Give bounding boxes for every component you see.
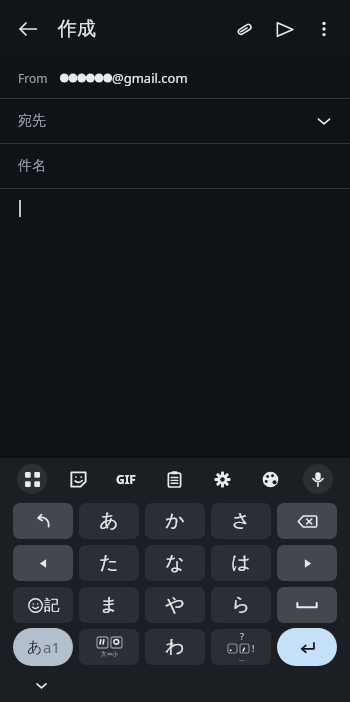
button[interactable]: は <box>211 545 271 581</box>
button[interactable]: た <box>79 545 139 581</box>
button[interactable] <box>0 189 350 458</box>
button[interactable]: 件名 <box>0 144 350 188</box>
staticText: や <box>165 593 185 617</box>
staticText: GIF <box>116 471 136 487</box>
other: Move right <box>301 557 314 570</box>
staticText: か <box>165 509 185 533</box>
button[interactable]: さ <box>211 503 271 539</box>
staticText: … <box>239 654 245 664</box>
staticText: a1 <box>43 637 60 657</box>
button[interactable]: Voice input <box>294 458 342 500</box>
button[interactable]: 宛先 <box>0 99 350 143</box>
other: Space <box>296 600 318 610</box>
button[interactable]: ま <box>79 587 139 623</box>
staticText: わ <box>165 635 185 659</box>
button[interactable]: Apps <box>8 458 55 500</box>
button[interactable]: Stickers <box>55 458 102 500</box>
button[interactable]: From <box>0 58 350 98</box>
staticText: ら <box>231 593 251 617</box>
button[interactable]: か <box>145 503 205 539</box>
staticText: た <box>99 551 119 575</box>
staticText: は <box>231 551 251 575</box>
staticText: あ <box>99 509 119 533</box>
staticText: さ <box>231 509 251 533</box>
button[interactable]: な <box>145 545 205 581</box>
button[interactable]: Settings <box>198 458 246 500</box>
button[interactable]: Back <box>8 9 48 49</box>
button[interactable]: あ <box>79 503 139 539</box>
button[interactable]: Move left <box>13 545 73 581</box>
button[interactable]: Attach file <box>224 9 264 49</box>
button[interactable]: Clipboard <box>150 458 198 500</box>
staticText: 件名 <box>18 157 46 175</box>
staticText: 記 <box>44 596 59 615</box>
button[interactable]: Undo <box>13 503 73 539</box>
staticText: From <box>18 70 48 86</box>
button[interactable]: Switch input mode <box>13 628 73 666</box>
button[interactable]: Hide keyboard <box>28 672 54 698</box>
staticText: ! <box>252 642 255 654</box>
other: Move left <box>37 557 50 570</box>
button[interactable]: Themes <box>246 458 294 500</box>
staticText: 作成 <box>58 17 96 41</box>
staticText: あ <box>27 638 43 657</box>
staticText: ま <box>99 593 119 617</box>
button[interactable]: Move right <box>277 545 337 581</box>
staticText: 宛先 <box>18 112 46 130</box>
button[interactable]: Enter <box>277 628 337 666</box>
button[interactable]: Space <box>277 587 337 623</box>
button[interactable]: More options <box>304 9 344 49</box>
button[interactable]: ら <box>211 587 271 623</box>
button[interactable]: Send <box>264 9 304 49</box>
button[interactable]: わ <box>145 629 205 665</box>
button[interactable]: や <box>145 587 205 623</box>
button[interactable]: 記 <box>13 587 73 623</box>
other: Undo <box>35 513 52 530</box>
staticText: 大⇔小 <box>101 650 119 658</box>
button[interactable]: 大⇔小 <box>79 629 139 665</box>
button[interactable]: GIF <box>102 458 150 500</box>
staticText: ? <box>240 630 244 642</box>
button[interactable]: ? <box>211 629 271 665</box>
other: Backspace <box>297 511 318 532</box>
button[interactable]: Backspace <box>277 503 337 539</box>
staticText: @gmail.com <box>112 69 188 87</box>
staticText: な <box>165 551 185 575</box>
